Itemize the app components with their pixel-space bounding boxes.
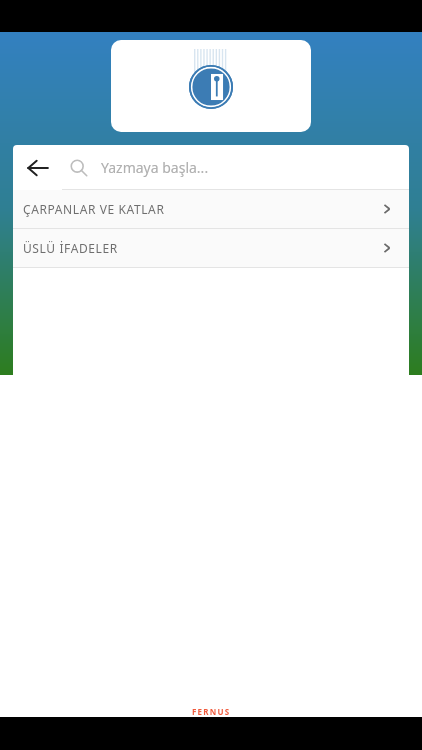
button[interactable]: Yazmaya başla...	[62, 145, 409, 190]
staticText: FERNUS	[192, 706, 231, 717]
staticText: ÇARPANLAR VE KATLAR	[23, 201, 165, 217]
button[interactable]: Back	[13, 145, 62, 190]
button[interactable]	[111, 40, 311, 132]
staticText: Yazmaya başla...	[101, 158, 209, 177]
staticText: ÜSLÜ İFADELER	[23, 240, 118, 256]
button[interactable]: ÇARPANLAR VE KATLAR	[13, 190, 409, 228]
button[interactable]: ÜSLÜ İFADELER	[13, 229, 409, 267]
